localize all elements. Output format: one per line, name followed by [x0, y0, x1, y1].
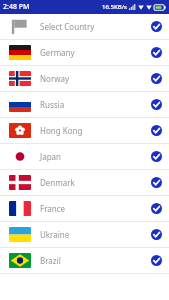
- staticText: Brazil: [40, 255, 61, 266]
- button[interactable]: Selected Germany: [151, 47, 162, 58]
- button[interactable]: Russia: [0, 92, 169, 118]
- button[interactable]: Selected Japan: [151, 151, 162, 162]
- button[interactable]: Selected Denmark: [151, 177, 162, 188]
- staticText: Hong Kong: [40, 125, 83, 136]
- staticText: Germany: [40, 47, 75, 58]
- staticText: Ukraine: [40, 229, 70, 240]
- button[interactable]: Selected Brazil: [151, 255, 162, 266]
- staticText: Denmark: [40, 177, 75, 188]
- button[interactable]: Norway: [0, 66, 169, 92]
- staticText: 2:48 PM: [3, 2, 30, 12]
- button[interactable]: France: [0, 196, 169, 222]
- button[interactable]: Denmark: [0, 170, 169, 196]
- button[interactable]: Selected France: [151, 203, 162, 214]
- button[interactable]: Select Country: [0, 14, 169, 40]
- staticText: Japan: [40, 151, 62, 162]
- staticText: Russia: [40, 99, 65, 110]
- button[interactable]: Ukraine: [0, 222, 169, 248]
- button[interactable]: Selected Hong Kong: [151, 125, 162, 136]
- staticText: France: [40, 203, 66, 214]
- staticText: 16.5KB/s: [102, 3, 127, 11]
- button[interactable]: Selected Select Country: [151, 21, 162, 32]
- button[interactable]: Japan: [0, 144, 169, 170]
- button[interactable]: Brazil: [0, 248, 169, 274]
- staticText: Select Country: [40, 21, 95, 32]
- staticText: Norway: [40, 73, 70, 84]
- button[interactable]: Germany: [0, 40, 169, 66]
- button[interactable]: Selected Russia: [151, 99, 162, 110]
- button[interactable]: Hong Kong: [0, 118, 169, 144]
- button[interactable]: Selected Ukraine: [151, 229, 162, 240]
- button[interactable]: Selected Norway: [151, 73, 162, 84]
